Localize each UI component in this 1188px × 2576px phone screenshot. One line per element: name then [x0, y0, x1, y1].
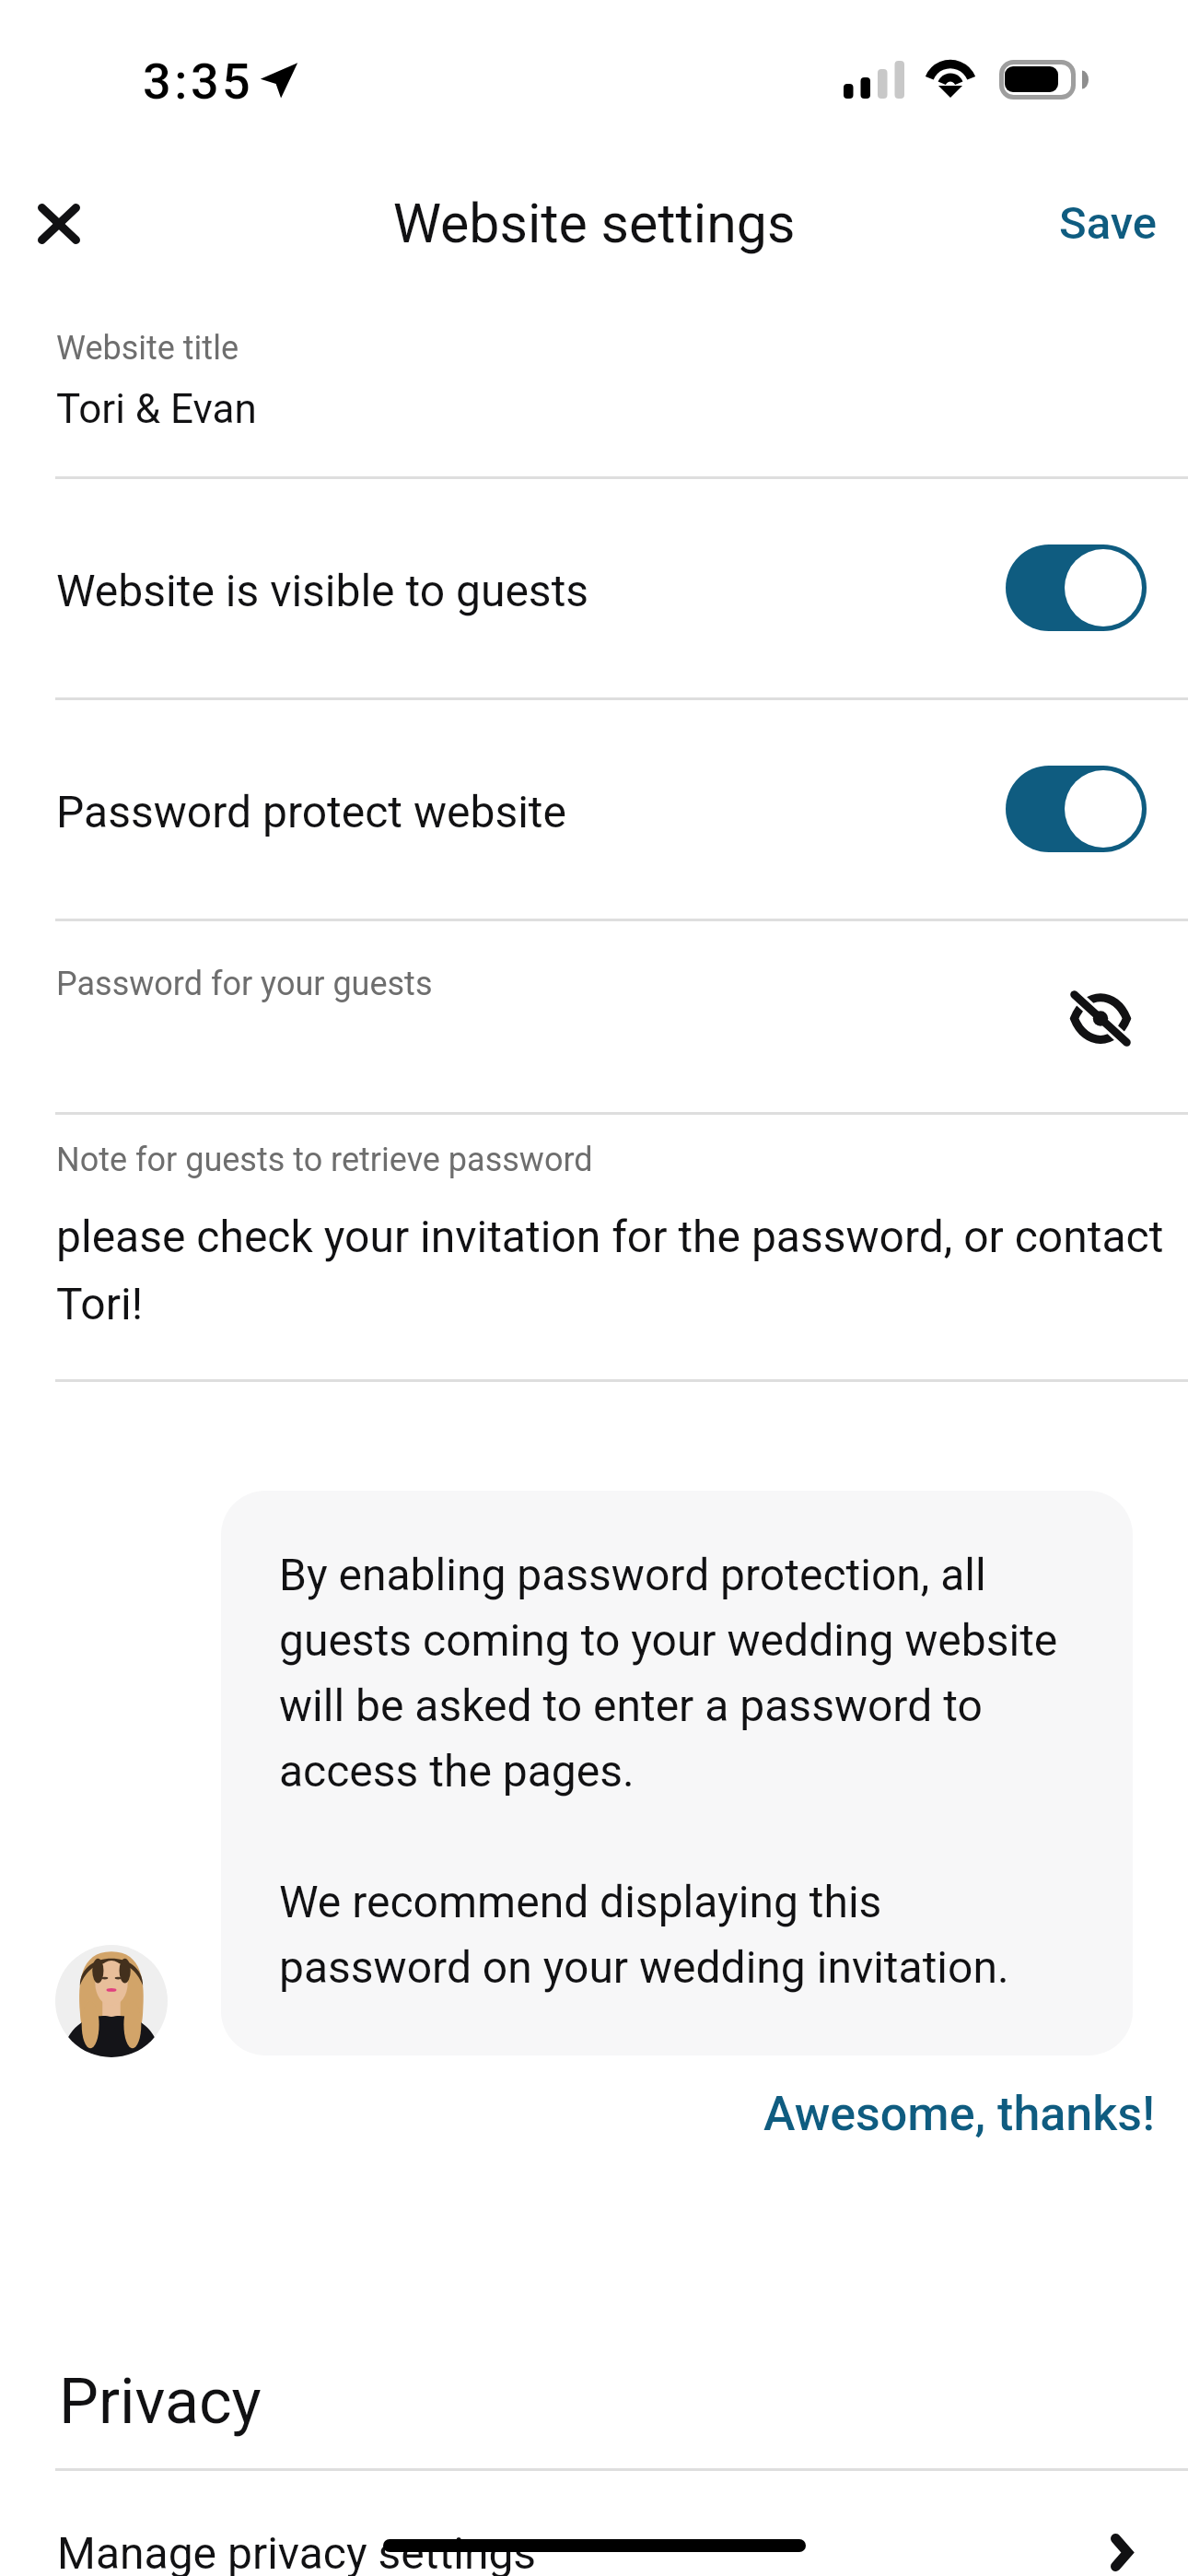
button[interactable]: Password protect website: [0, 699, 1188, 919]
staticText: We recommend displaying this password on…: [279, 1866, 1073, 1996]
button[interactable]: Website is visible to guests: [0, 478, 1188, 697]
button[interactable]: Close: [19, 184, 98, 263]
button[interactable]: Show password: [1053, 970, 1148, 1066]
button[interactable]: Note for guests to retrieve password: [0, 1114, 1188, 1377]
staticText: Website settings: [0, 192, 1188, 255]
button[interactable]: Awesome, thanks!: [745, 2071, 1173, 2157]
staticText: Privacy: [59, 2365, 262, 2439]
button[interactable]: Website title: [0, 276, 1188, 474]
staticText: Awesome, thanks!: [763, 2086, 1155, 2142]
button[interactable]: Website is visible to guests, on: [1006, 544, 1147, 631]
button[interactable]: Save: [1039, 181, 1177, 266]
staticText: Save: [1059, 197, 1157, 250]
staticText: 3:35: [143, 53, 254, 111]
staticText: Website is visible to guests: [56, 565, 589, 616]
staticText: By enabling password protection, all gue…: [279, 1539, 1073, 1800]
button[interactable]: Password protect website, on: [1006, 766, 1147, 852]
staticText: Website title: [56, 329, 239, 368]
staticText: Note for guests to retrieve password: [56, 1141, 593, 1179]
staticText: Password for your guests: [56, 965, 433, 1003]
staticText: Password protect website: [56, 786, 567, 837]
button[interactable]: Password for your guests: [0, 920, 1188, 1112]
staticText: Manage privacy settings: [57, 2527, 537, 2576]
staticText: Tori & Evan: [56, 385, 257, 433]
button[interactable]: Manage privacy settings: [0, 2470, 1188, 2576]
staticText: please check your invitation for the pas…: [56, 1199, 1171, 1333]
